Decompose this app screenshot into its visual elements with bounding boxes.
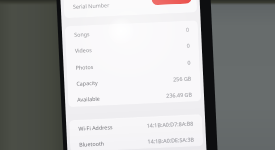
staticText: 0 [185, 26, 189, 33]
staticText: 0 [186, 59, 191, 66]
button[interactable]: Wi-Fi Address [69, 114, 203, 136]
staticText: Videos [75, 46, 92, 54]
button[interactable]: Bluetooth [70, 130, 203, 150]
staticText: Wi-Fi Address [78, 123, 113, 132]
staticText: 14:1B:A0:DE:5A:3B [147, 135, 194, 145]
staticText: Serial Number [73, 1, 110, 10]
button[interactable]: Songs [65, 20, 198, 42]
button[interactable]: Photos [66, 53, 200, 75]
staticText: 14:1B:A0:D7:8A:B8 [146, 119, 193, 129]
button[interactable]: Videos [65, 36, 199, 59]
staticText: 0 [185, 42, 190, 49]
staticText: Capacity [76, 79, 98, 87]
staticText: Photos [75, 63, 94, 71]
staticText: 236.49 GB [166, 91, 192, 99]
staticText: Available [77, 95, 100, 103]
button[interactable]: Erase All Content [151, 0, 192, 5]
button[interactable]: Available [68, 85, 201, 107]
button[interactable]: Serial Number [63, 0, 197, 14]
staticText: 256 GB [172, 75, 191, 82]
staticText: Bluetooth [79, 139, 105, 148]
staticText: Songs [74, 30, 90, 38]
button[interactable]: Capacity [67, 69, 200, 91]
